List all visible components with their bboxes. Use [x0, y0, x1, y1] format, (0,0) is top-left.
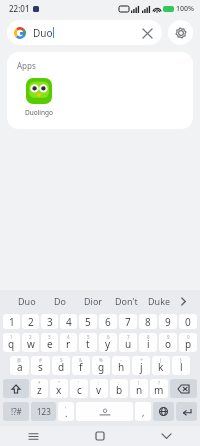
- button[interactable]: 7: [119, 333, 137, 352]
- button[interactable]: @: [10, 356, 29, 375]
- staticText: 2: [29, 334, 32, 340]
- staticText: 123: [37, 406, 51, 417]
- button[interactable]: ,: [58, 402, 74, 421]
- staticText: 5: [85, 315, 91, 329]
- staticText: p: [185, 337, 192, 351]
- button[interactable]: 4: [60, 333, 77, 352]
- button[interactable]: *: [31, 379, 48, 398]
- button[interactable]: 0: [179, 314, 197, 329]
- staticText: 4: [67, 334, 70, 340]
- staticText: q: [8, 337, 15, 351]
- staticText: &: [79, 357, 83, 363]
- staticText: 2: [28, 315, 34, 329]
- staticText: Don't: [115, 295, 138, 307]
- button[interactable]: ': [70, 379, 88, 398]
- button[interactable]: +: [132, 356, 150, 375]
- staticText: :: [98, 380, 100, 386]
- staticText: .: [65, 407, 68, 419]
- button[interactable]: 0: [179, 333, 197, 352]
- button[interactable]: :: [90, 379, 108, 398]
- staticText: Apps: [17, 60, 36, 71]
- button[interactable]: ,: [135, 402, 151, 421]
- staticText: w: [27, 337, 35, 351]
- button[interactable]: Do: [44, 290, 77, 312]
- button[interactable]: !: [130, 379, 148, 398]
- button[interactable]: 1: [3, 333, 20, 352]
- button[interactable]: %: [92, 356, 110, 375]
- staticText: Duo: [18, 295, 36, 307]
- staticText: $: [60, 357, 63, 363]
- button[interactable]: 8: [139, 333, 157, 352]
- staticText: 0: [185, 315, 191, 329]
- staticText: 8: [145, 315, 151, 329]
- button[interactable]: Recents: [0, 426, 66, 446]
- button[interactable]: 9: [159, 333, 177, 352]
- button[interactable]: 6: [99, 314, 117, 329]
- button[interactable]: Space: [76, 402, 133, 421]
- button[interactable]: ": [50, 379, 68, 398]
- staticText: i: [147, 337, 150, 351]
- button[interactable]: Language: [153, 402, 174, 421]
- staticText: 1: [9, 315, 15, 329]
- staticText: +: [140, 357, 143, 363]
- button[interactable]: Don't: [110, 290, 143, 312]
- button[interactable]: 6: [99, 333, 117, 352]
- button[interactable]: Shift: [3, 379, 29, 398]
- staticText: y: [105, 337, 111, 351]
- staticText: a: [17, 360, 23, 374]
- button[interactable]: Duolingo: [17, 78, 61, 117]
- button[interactable]: 5: [79, 314, 97, 329]
- button[interactable]: More suggestions: [176, 290, 190, 312]
- staticText: ?: [158, 380, 160, 386]
- button[interactable]: 2: [22, 314, 39, 329]
- button[interactable]: 3: [41, 314, 58, 329]
- button[interactable]: 2: [22, 333, 39, 352]
- button[interactable]: ;: [110, 379, 128, 398]
- staticText: h: [118, 360, 125, 374]
- button[interactable]: 123: [31, 402, 56, 421]
- staticText: 0: [187, 334, 190, 340]
- button[interactable]: 7: [119, 314, 137, 329]
- button[interactable]: !?#: [3, 402, 29, 421]
- staticText: (: [160, 357, 162, 363]
- staticText: e: [47, 337, 53, 351]
- staticText: n: [136, 383, 143, 397]
- button[interactable]: $: [52, 356, 70, 375]
- staticText: Duke: [148, 295, 171, 307]
- staticText: #: [39, 357, 42, 363]
- button[interactable]: #: [31, 356, 50, 375]
- staticText: t: [86, 337, 90, 351]
- button[interactable]: Enter: [176, 402, 197, 421]
- button[interactable]: Duo: [10, 290, 44, 312]
- button[interactable]: 4: [60, 314, 77, 329]
- staticText: !?#: [11, 406, 22, 417]
- button[interactable]: &: [72, 356, 90, 375]
- button[interactable]: 5: [79, 333, 97, 352]
- button[interactable]: Duo: [7, 20, 162, 45]
- button[interactable]: 8: [139, 314, 157, 329]
- staticText: Dior: [84, 295, 103, 307]
- staticText: Duolingo: [25, 108, 53, 117]
- staticText: s: [38, 360, 43, 374]
- button[interactable]: Duke: [143, 290, 176, 312]
- button[interactable]: 1: [3, 314, 20, 329]
- staticText: g: [98, 360, 105, 374]
- button[interactable]: ): [172, 356, 190, 375]
- button[interactable]: 9: [159, 314, 177, 329]
- button[interactable]: 3: [41, 333, 58, 352]
- staticText: v: [96, 383, 102, 397]
- button[interactable]: Back: [133, 426, 200, 446]
- staticText: *: [38, 380, 41, 386]
- button[interactable]: Clear: [139, 25, 155, 41]
- button[interactable]: Backspace: [170, 379, 197, 398]
- staticText: m: [154, 383, 164, 397]
- button[interactable]: Home: [66, 426, 133, 446]
- staticText: o: [165, 337, 172, 351]
- button[interactable]: ?: [150, 379, 168, 398]
- staticText: b: [116, 383, 123, 397]
- button[interactable]: (: [152, 356, 170, 375]
- button[interactable]: Settings: [168, 20, 193, 45]
- button[interactable]: -: [112, 356, 130, 375]
- button[interactable]: Dior: [77, 290, 110, 312]
- staticText: 5: [87, 334, 90, 340]
